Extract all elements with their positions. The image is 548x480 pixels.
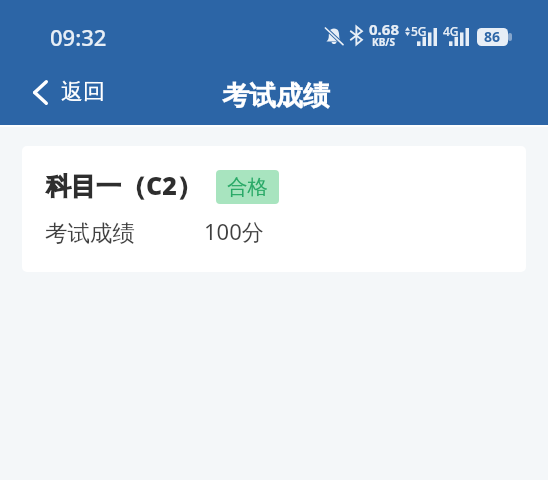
staticText: 4G: [443, 23, 459, 39]
staticText: 考试成绩: [45, 219, 135, 247]
button[interactable]: 科目一（C2）: [22, 146, 526, 272]
staticText: KB/S: [372, 35, 395, 49]
staticText: 科目一（C2）: [46, 168, 202, 202]
staticText: 86: [484, 28, 501, 45]
staticText: 09:32: [50, 22, 107, 52]
button[interactable]: Back: [0, 72, 119, 112]
staticText: 考试成绩: [222, 79, 330, 113]
staticText: 返回: [61, 78, 105, 106]
staticText: 5G: [411, 23, 427, 39]
other: Back: [33, 80, 48, 105]
staticText: 0.68: [369, 19, 399, 39]
staticText: 合格: [227, 174, 268, 200]
staticText: 100分: [204, 216, 264, 246]
